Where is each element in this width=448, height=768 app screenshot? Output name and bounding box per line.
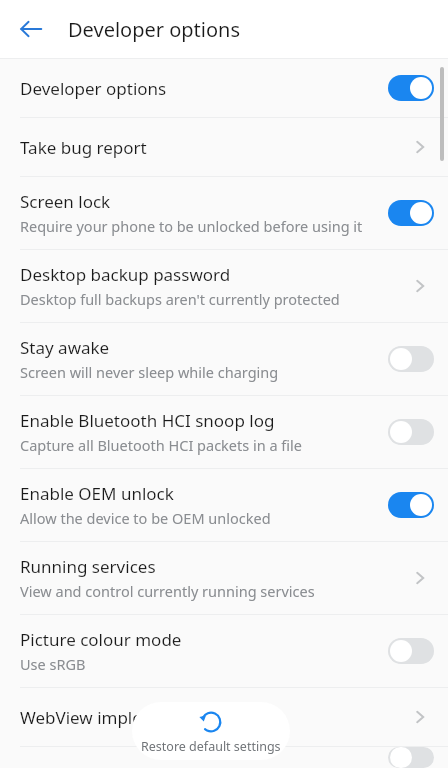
button[interactable]: Multi-process WebView	[0, 747, 448, 768]
button[interactable]: Picture colour mode	[0, 615, 448, 687]
staticText: Desktop full backups aren't currently pr…	[20, 289, 340, 309]
button[interactable]: Enable Bluetooth HCI snoop log	[0, 396, 448, 468]
staticText: Screen will never sleep while charging	[20, 362, 279, 382]
staticText: Picture colour mode	[20, 628, 182, 651]
button[interactable]: Stay awake	[0, 323, 448, 395]
staticText: Desktop backup password	[20, 263, 231, 286]
staticText: Screen lock	[20, 190, 111, 213]
staticText: Enable Bluetooth HCI snoop log	[20, 409, 275, 432]
button[interactable]: Running services	[0, 542, 448, 614]
button[interactable]: Screen lock	[0, 177, 448, 249]
button[interactable]: Take bug report	[0, 118, 448, 176]
staticText: Allow the device to be OEM unlocked	[20, 508, 271, 528]
button[interactable]: Developer options	[0, 59, 448, 117]
staticText: Developer options	[20, 77, 167, 100]
staticText: Capture all Bluetooth HCI packets in a f…	[20, 435, 302, 455]
staticText: View and control currently running servi…	[20, 581, 315, 601]
staticText: WebView implementation	[20, 706, 225, 729]
staticText: Require your phone to be unlocked before…	[20, 216, 363, 236]
button[interactable]: Back	[8, 6, 54, 52]
staticText: Stay awake	[20, 336, 110, 359]
button[interactable]: Desktop backup password	[0, 250, 448, 322]
button[interactable]: Enable OEM unlock	[0, 469, 448, 541]
staticText: Restore default settings	[141, 738, 281, 755]
staticText: Take bug report	[20, 136, 147, 159]
staticText: Running services	[20, 555, 156, 578]
staticText: Developer options	[68, 16, 241, 43]
staticText: Use sRGB	[20, 654, 86, 674]
staticText: Enable OEM unlock	[20, 482, 174, 505]
button[interactable]: Restore default settings	[132, 702, 290, 760]
button[interactable]: WebView implementation	[0, 688, 448, 746]
